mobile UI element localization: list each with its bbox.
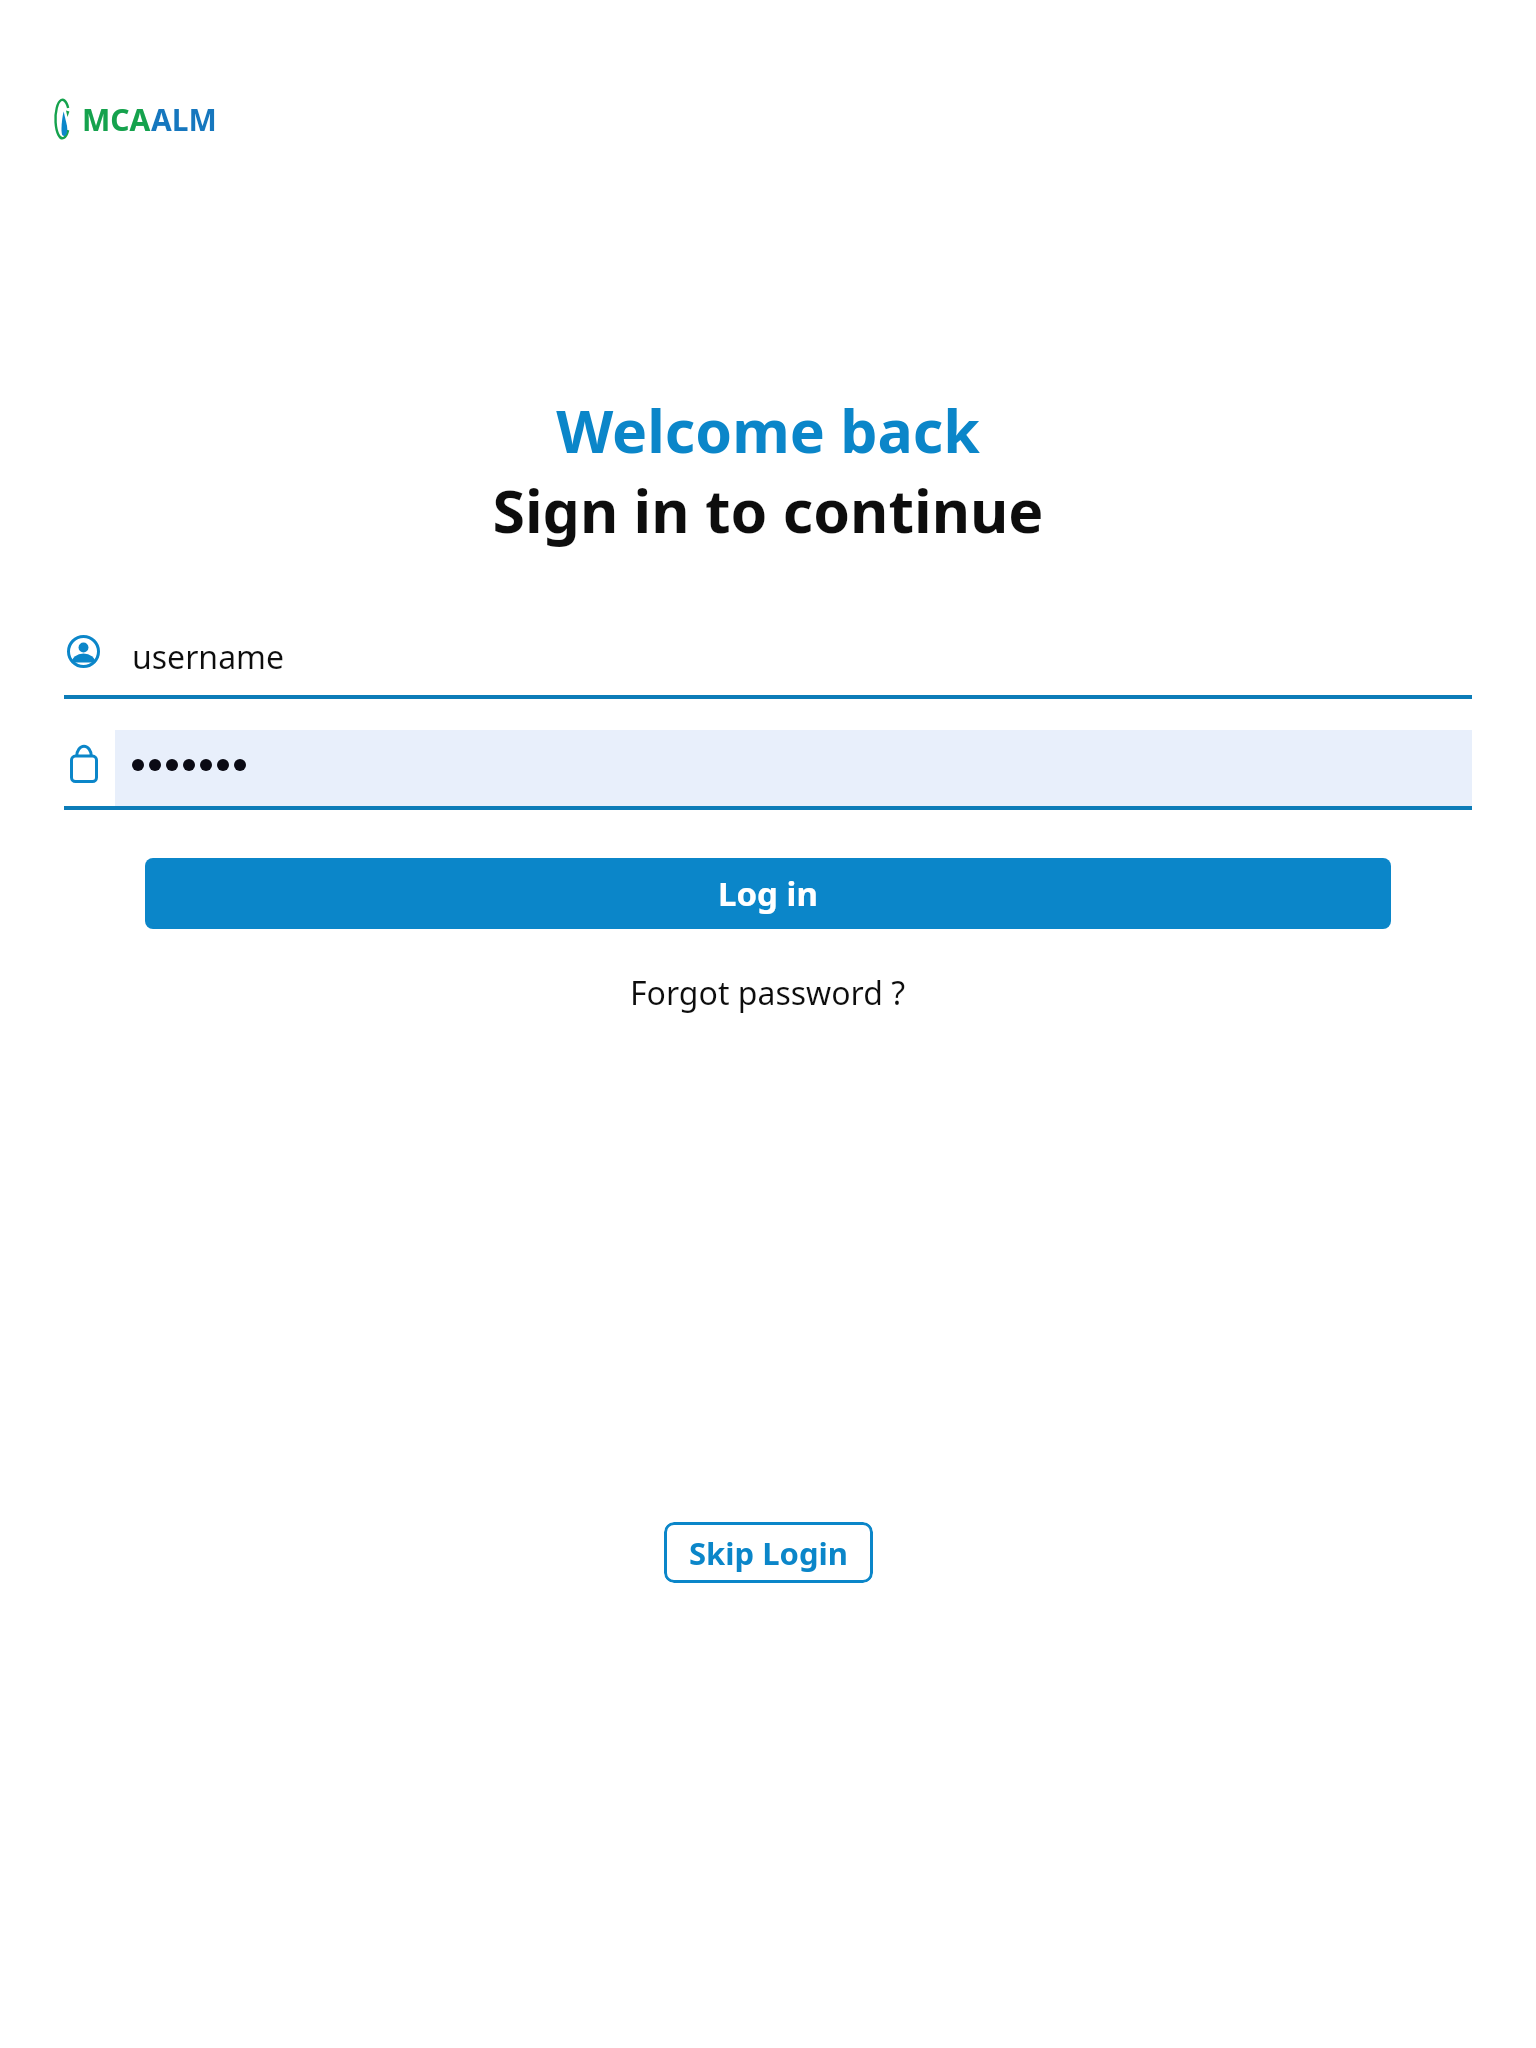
other: Password [70,745,98,783]
button[interactable]: Skip Login [664,1522,873,1583]
staticText: Skip Login [689,1532,848,1574]
staticText: Sign in to continue [0,470,1536,550]
button[interactable]: Forgot password ? [628,963,908,1023]
button[interactable]: Log in [145,858,1391,929]
staticText: Welcome back [0,390,1536,470]
staticText: MCA [82,99,151,140]
staticText: Log in [718,871,818,916]
other: Account [67,635,100,668]
staticText: ALM [151,99,217,140]
staticText: Forgot password ? [630,971,906,1015]
staticText: username [132,635,285,679]
